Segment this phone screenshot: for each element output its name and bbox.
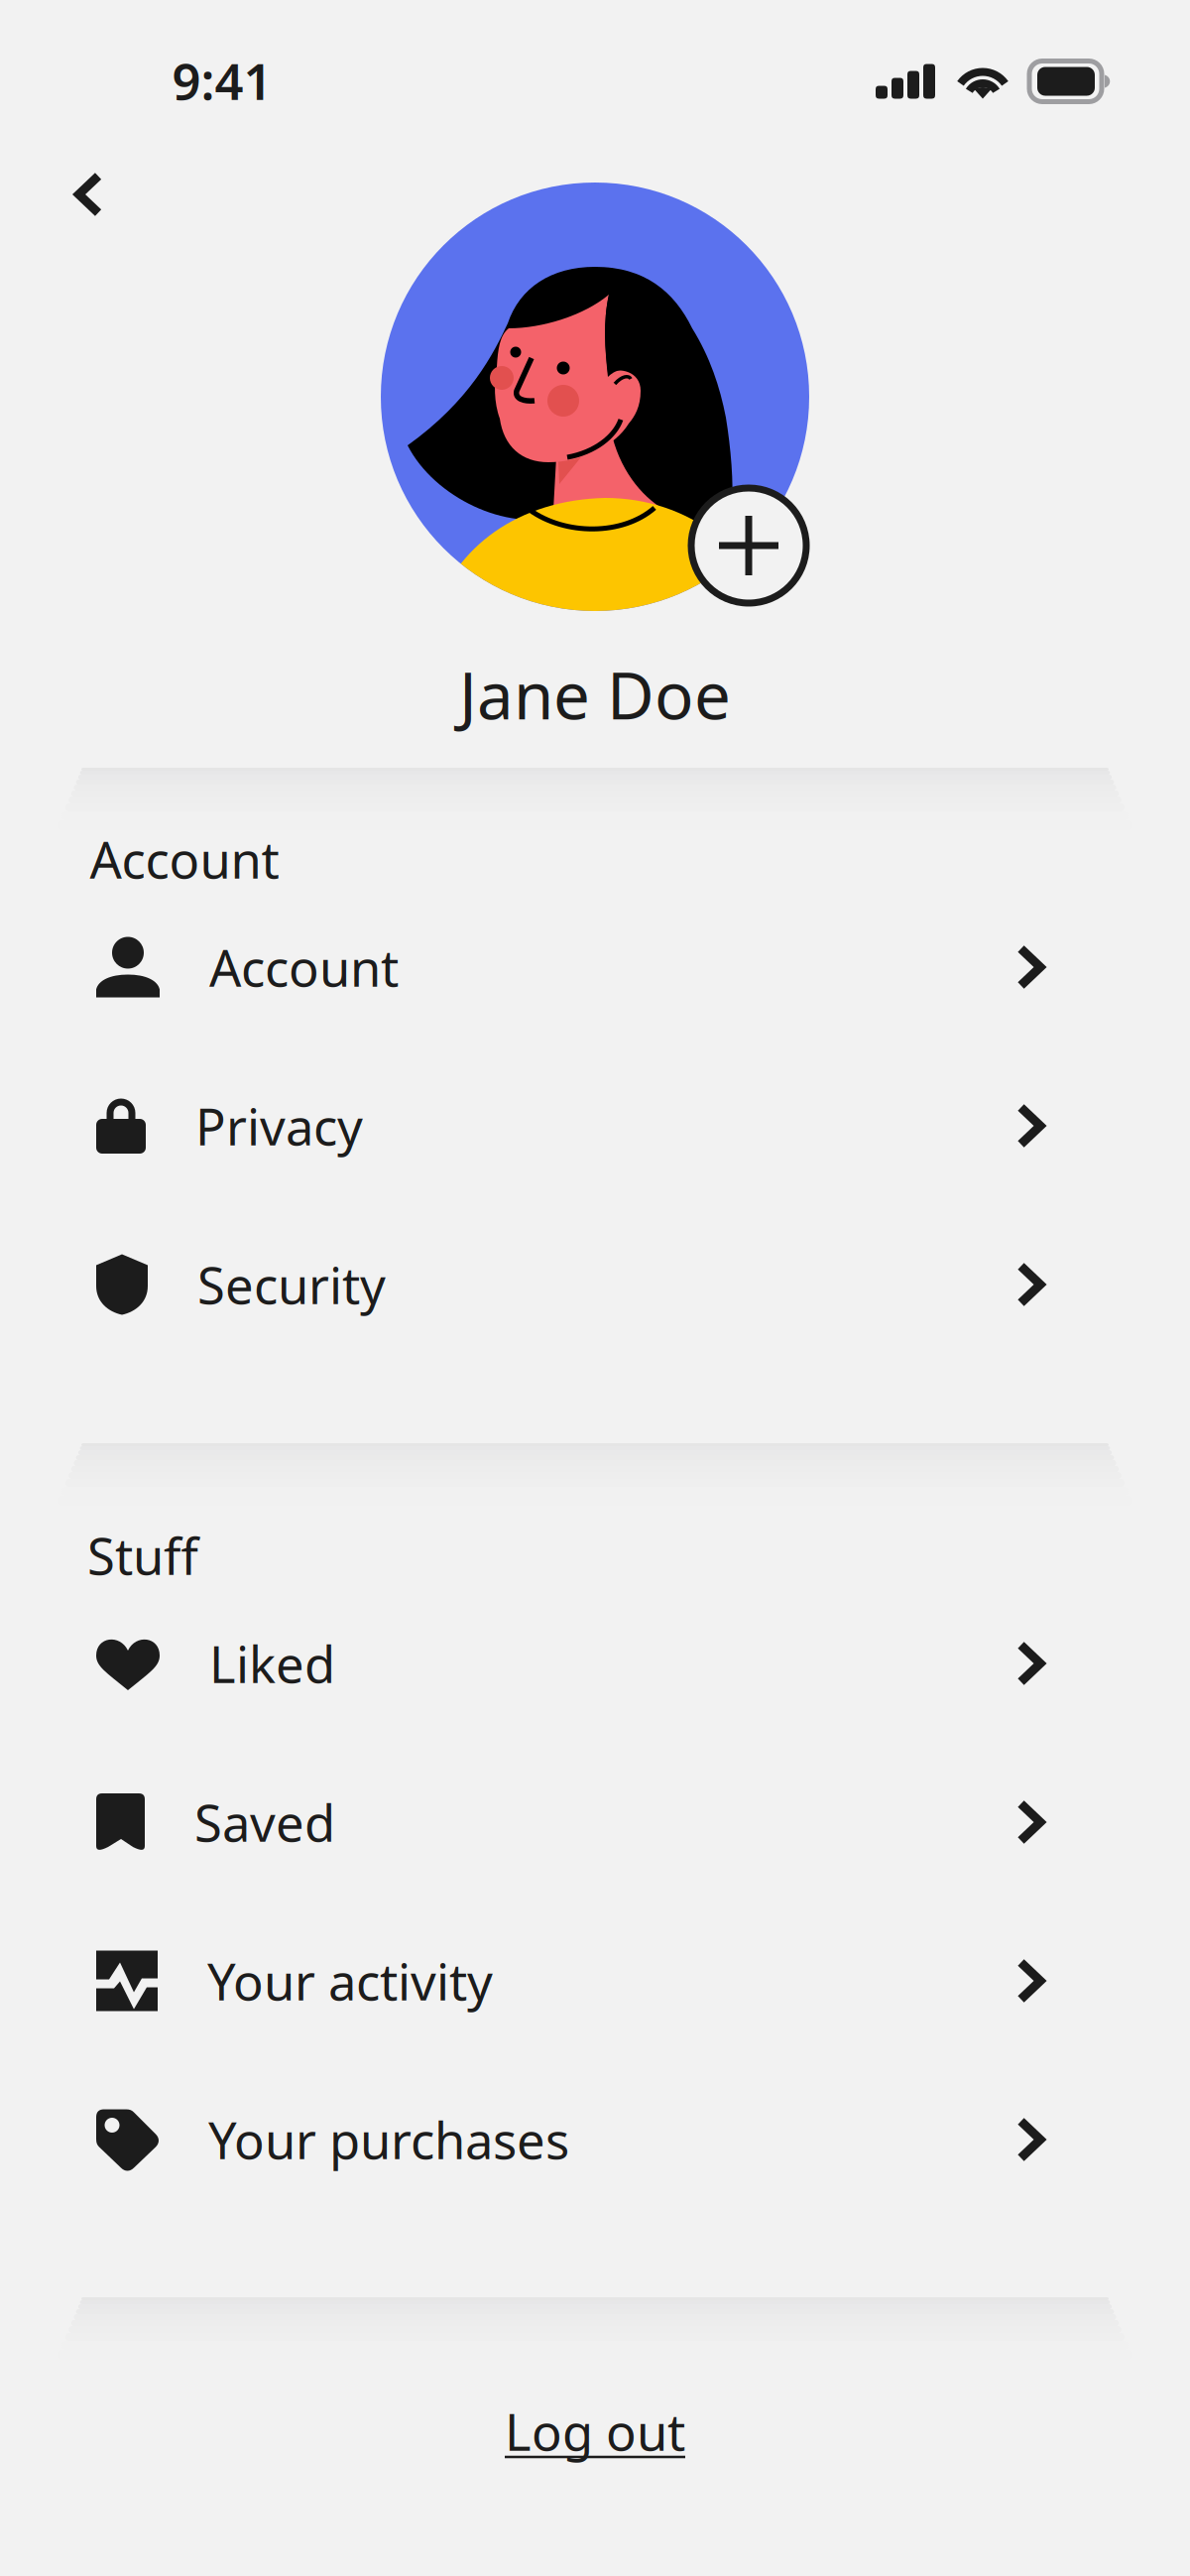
staticText: Liked (209, 1630, 335, 1697)
staticText: Your purchases (208, 2106, 569, 2173)
staticText: Saved (194, 1789, 335, 1856)
button[interactable]: Back (49, 146, 128, 243)
button[interactable]: Privacy (0, 1046, 1190, 1205)
button[interactable]: Change photo (691, 488, 806, 603)
button[interactable]: Saved (0, 1743, 1190, 1901)
staticText: Account (90, 826, 279, 892)
button[interactable]: Account (0, 888, 1190, 1046)
staticText: Log out (505, 2398, 685, 2465)
staticText: Security (197, 1251, 386, 1318)
button[interactable]: Your activity (0, 1901, 1190, 2060)
staticText: Jane Doe (459, 651, 731, 737)
staticText: Account (209, 934, 399, 1001)
button[interactable]: Liked (0, 1584, 1190, 1743)
button[interactable]: Security (0, 1205, 1190, 1364)
staticText: Stuff (87, 1522, 198, 1589)
staticText: Privacy (195, 1092, 363, 1159)
staticText: 9:41 (172, 47, 272, 114)
button[interactable]: Log out (465, 2374, 725, 2488)
staticText: Your activity (207, 1948, 493, 2014)
button[interactable]: Your purchases (0, 2060, 1190, 2219)
